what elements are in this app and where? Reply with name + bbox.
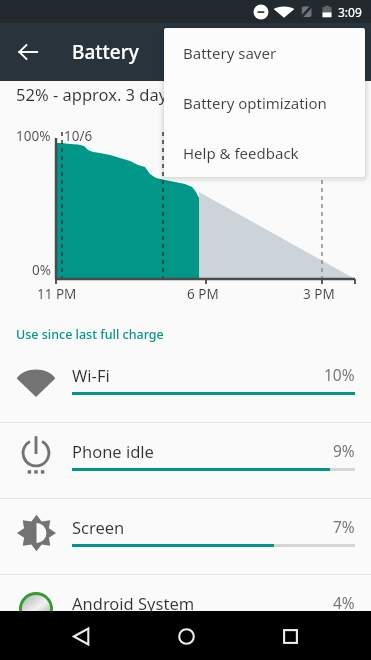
button[interactable]: Recent apps [266,612,314,660]
staticText: Battery saver [183,43,277,63]
button[interactable]: Home [162,612,210,660]
staticText: Screen [72,516,125,538]
staticText: Wi-Fi [72,364,110,386]
staticText: 0% [32,261,51,279]
button[interactable]: Help & feedback [164,128,365,177]
button[interactable]: Back [57,612,105,660]
staticText: 3 PM [303,285,335,303]
staticText: 11 PM [37,285,77,303]
staticText: Battery optimization [183,93,327,113]
staticText: 3:09 [338,4,362,20]
staticText: 52% - approx. 3 days left [16,83,205,105]
staticText: Help & feedback [183,143,299,163]
button[interactable]: Battery saver [164,28,365,78]
staticText: Android System [72,592,195,614]
staticText: 100% [16,127,51,145]
button[interactable]: Android System [0,575,371,651]
staticText: 9% [333,440,355,461]
staticText: 4% [333,592,355,613]
button[interactable]: Wi-Fi [0,347,371,423]
staticText: Use since last full charge [16,326,164,343]
button[interactable]: Screen [0,499,371,575]
staticText: 6 PM [187,285,219,303]
staticText: Phone idle [72,440,154,462]
button[interactable]: Navigate up [0,24,56,80]
button[interactable]: Battery optimization [164,78,365,128]
staticText: 10/6 [64,127,93,145]
button[interactable]: Phone idle [0,423,371,499]
staticText: 7% [333,516,355,537]
staticText: 10% [324,364,355,385]
staticText: Battery [72,39,139,65]
